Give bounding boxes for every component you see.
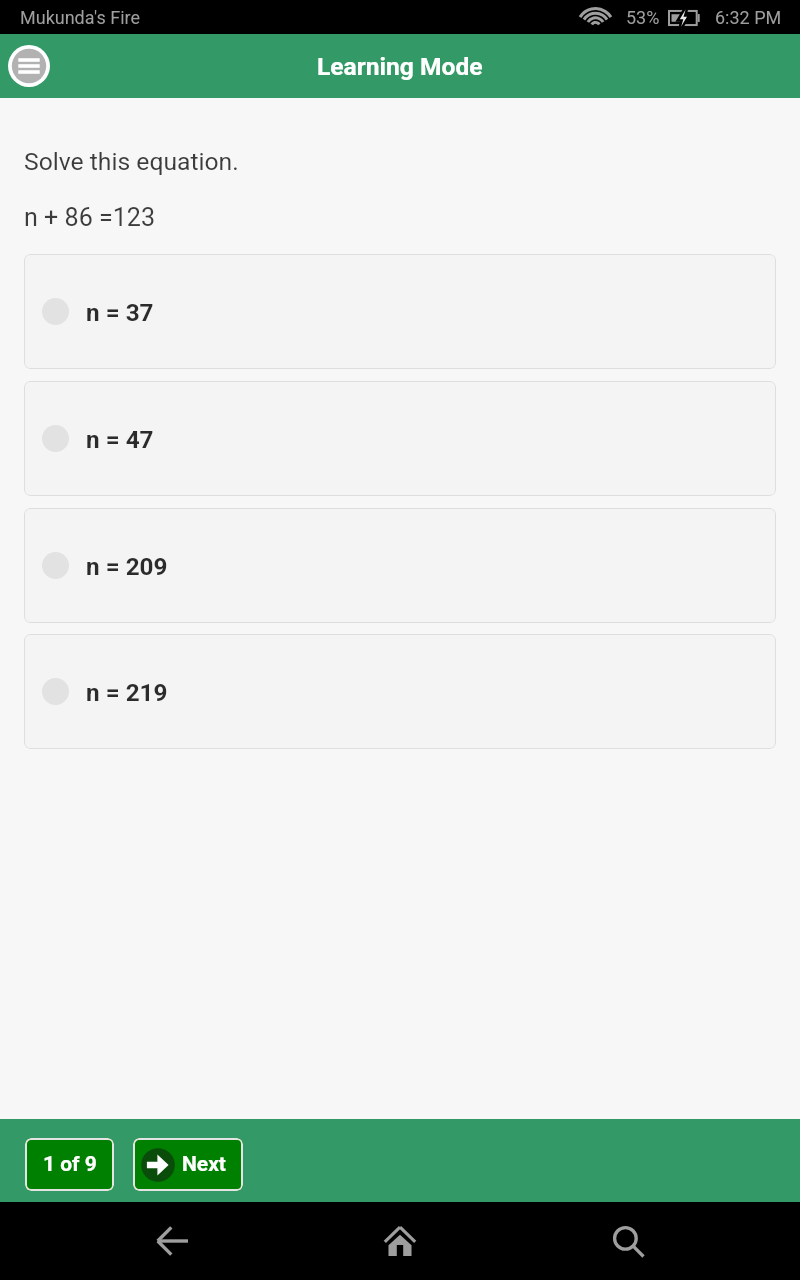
staticText: Next — [182, 1152, 226, 1177]
staticText: 1 of 9 — [43, 1152, 97, 1177]
staticText: n = 209 — [86, 552, 168, 580]
staticText: 53% — [626, 7, 660, 28]
button[interactable]: n = 37 — [24, 254, 776, 369]
button[interactable]: Search — [572, 1202, 684, 1280]
staticText: 6:32 PM — [715, 7, 782, 28]
button[interactable]: Open navigation menu — [4, 41, 54, 91]
button[interactable]: Next — [133, 1138, 243, 1191]
button[interactable]: n = 209 — [24, 508, 776, 623]
staticText: n + 86 =123 — [24, 203, 156, 232]
button[interactable]: n = 219 — [24, 634, 776, 749]
staticText: n = 219 — [86, 678, 168, 706]
staticText: n = 37 — [86, 298, 154, 326]
button[interactable]: Back — [116, 1202, 228, 1280]
button[interactable]: Home — [344, 1202, 456, 1280]
staticText: Mukunda's Fire — [20, 7, 140, 28]
button[interactable]: 1 of 9 — [25, 1138, 114, 1191]
staticText: Learning Mode — [317, 52, 483, 81]
button[interactable]: n = 47 — [24, 381, 776, 496]
staticText: n = 47 — [86, 425, 154, 453]
staticText: Solve this equation. — [24, 147, 239, 176]
